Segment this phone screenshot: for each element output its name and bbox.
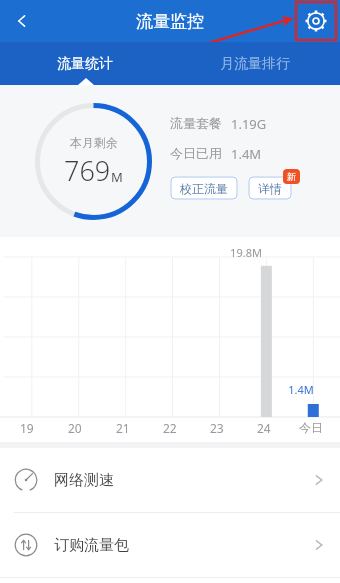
- staticText: 19.8M: [226, 245, 266, 260]
- staticText: 769: [64, 152, 111, 189]
- staticText: 流量统计: [57, 55, 113, 73]
- staticText: 新: [287, 171, 296, 182]
- staticText: 今日已用: [170, 145, 222, 161]
- button[interactable]: Back: [0, 0, 44, 42]
- staticText: 19: [20, 420, 34, 436]
- staticText: 21: [116, 420, 130, 436]
- staticText: M: [111, 168, 123, 186]
- staticText: 1.4M: [231, 145, 262, 163]
- staticText: 详情: [258, 181, 282, 196]
- staticText: 月流量排行: [220, 55, 290, 73]
- button[interactable]: 校正流量: [170, 176, 238, 200]
- staticText: 23: [210, 420, 224, 436]
- staticText: 校正流量: [180, 181, 228, 196]
- staticText: 22: [163, 420, 177, 436]
- button[interactable]: 流量统计: [0, 42, 170, 85]
- staticText: 流量套餐: [170, 115, 222, 131]
- button[interactable]: 月流量排行: [170, 42, 340, 85]
- button[interactable]: Settings: [296, 2, 336, 40]
- button[interactable]: 订购流量包: [0, 513, 340, 577]
- staticText: 本月剩余: [70, 135, 118, 150]
- staticText: 20: [68, 420, 82, 436]
- staticText: 网络测速: [54, 471, 114, 490]
- button[interactable]: 详情: [248, 176, 292, 200]
- staticText: 流量监控: [136, 11, 204, 32]
- button[interactable]: 网络测速: [0, 448, 340, 512]
- staticText: 24: [257, 420, 271, 436]
- staticText: 今日: [299, 420, 323, 435]
- staticText: 订购流量包: [54, 536, 129, 555]
- staticText: 1.4M: [282, 382, 320, 397]
- staticText: 1.19G: [231, 115, 267, 133]
